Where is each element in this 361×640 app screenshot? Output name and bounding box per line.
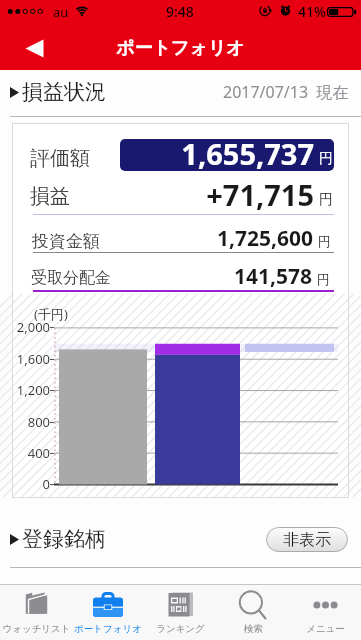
button[interactable]: ウォッチリスト (0, 584, 72, 640)
staticText: 2,000 (16, 318, 50, 336)
staticText: 登録銘柄 (22, 526, 106, 552)
staticText: 141,578 (233, 262, 312, 291)
staticText: (千円) (34, 305, 68, 323)
button[interactable]: ランキング (144, 584, 216, 640)
button[interactable]: 非表示 (266, 527, 348, 552)
staticText: +71,715 (206, 175, 314, 214)
staticText: ポートフォリオ (74, 623, 142, 635)
staticText: 円 (317, 271, 330, 287)
button[interactable]: 検索 (217, 584, 289, 640)
button[interactable]: ポートフォリオ (72, 584, 144, 640)
staticText: 2017/07/13 現在 (223, 81, 349, 103)
staticText: 投資金額 (32, 231, 100, 252)
staticText: 受取分配金 (31, 268, 111, 288)
staticText: 損益状況 (22, 79, 106, 105)
staticText: 41% (298, 2, 326, 21)
staticText: 円 (318, 233, 331, 249)
staticText: 1,200 (16, 381, 50, 399)
staticText: ランキング (156, 623, 205, 635)
staticText: 検索 (244, 623, 263, 635)
staticText: 0 (42, 475, 50, 493)
staticText: 800 (27, 413, 50, 431)
staticText: 損益 (30, 184, 70, 209)
staticText: 非表示 (283, 530, 331, 550)
staticText: 評価額 (30, 146, 90, 171)
button[interactable]: メニュー (289, 584, 361, 640)
staticText: 1,600 (16, 350, 50, 368)
staticText: 円 (319, 150, 333, 168)
staticText: 400 (27, 444, 50, 462)
staticText: au (53, 3, 69, 21)
staticText: 1,655,737 (181, 134, 314, 173)
staticText: ポートフォリオ (116, 37, 245, 60)
staticText: 1,725,600 (216, 224, 313, 253)
staticText: 円 (319, 191, 333, 209)
staticText: ウォッチリスト (2, 623, 71, 635)
staticText: 9:48 (166, 2, 194, 21)
button[interactable]: Back (13, 34, 57, 62)
staticText: メニュー (306, 623, 345, 635)
